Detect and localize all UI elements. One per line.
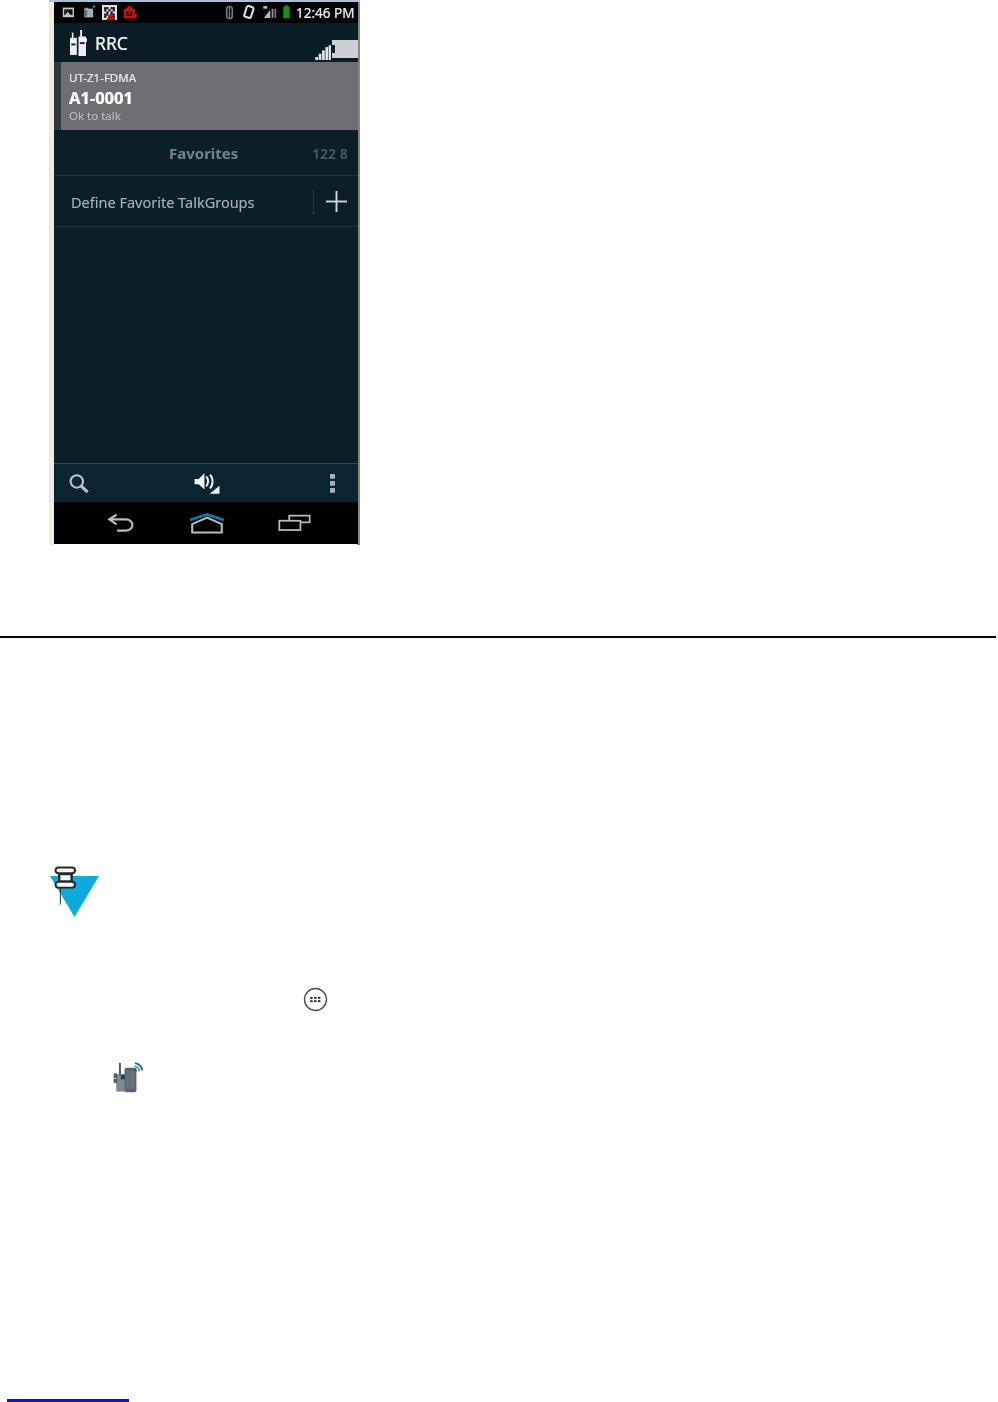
staticText: A1-0001 xyxy=(69,86,133,108)
staticText: 12:46 PM xyxy=(296,4,355,22)
staticText: RRC xyxy=(95,31,128,55)
button[interactable]: Recent apps xyxy=(254,502,334,544)
staticText: Ok to talk xyxy=(69,108,121,124)
staticText: Favorites xyxy=(169,143,239,163)
button[interactable]: Back xyxy=(79,502,163,544)
button[interactable]: Add favorite talkgroup xyxy=(314,176,358,227)
button[interactable]: Favorites xyxy=(149,130,259,176)
staticText: 122 8 xyxy=(312,144,348,163)
staticText: Define Favorite TalkGroups xyxy=(71,192,255,212)
button[interactable]: Search xyxy=(54,464,106,502)
button[interactable]: UT-Z1-FDMA xyxy=(54,62,358,130)
button[interactable]: More options xyxy=(308,464,355,502)
button[interactable]: Home xyxy=(167,502,247,544)
button[interactable]: Define Favorite TalkGroups xyxy=(54,176,358,227)
button[interactable]: 122 8 xyxy=(312,130,362,176)
staticText: UT-Z1-FDMA xyxy=(69,70,137,86)
button[interactable]: Volume xyxy=(174,464,242,502)
